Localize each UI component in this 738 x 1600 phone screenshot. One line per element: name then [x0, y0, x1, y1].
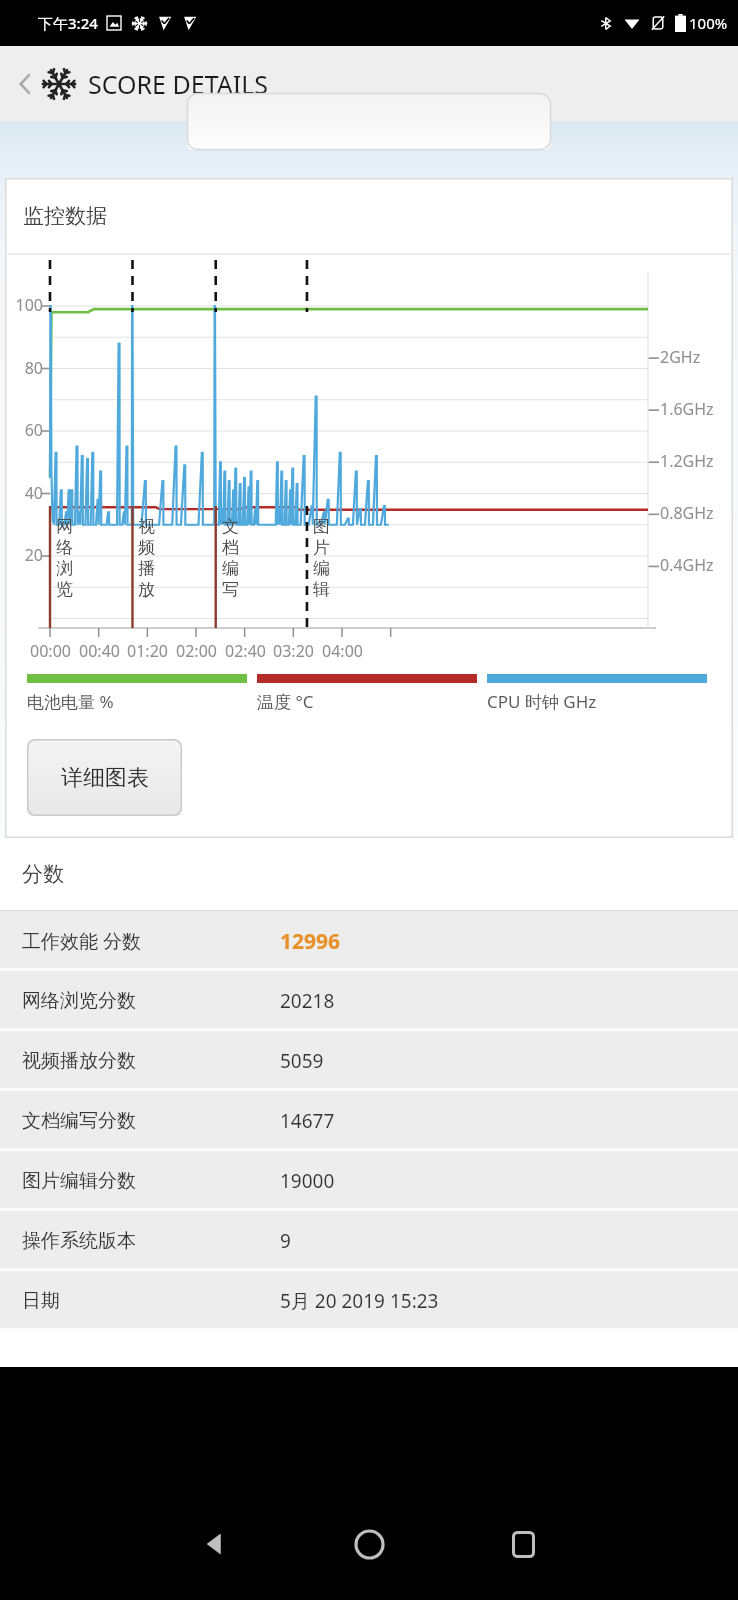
staticText: 放: [138, 579, 155, 600]
button[interactable]: 工作效能 分数: [0, 911, 738, 971]
button[interactable]: 网络浏览分数: [0, 971, 738, 1031]
staticText: 电池电量 %: [27, 690, 114, 713]
staticText: 100: [15, 294, 43, 316]
staticText: 档: [222, 537, 239, 558]
staticText: 监控数据: [23, 203, 107, 229]
staticText: 00:40: [79, 640, 120, 662]
staticText: 视: [138, 516, 155, 537]
staticText: 编: [313, 558, 330, 579]
staticText: 20218: [280, 988, 335, 1014]
staticText: 图: [313, 516, 330, 537]
staticText: 12996: [280, 927, 341, 956]
staticText: 分数: [22, 861, 64, 887]
staticText: 5月 20 2019 15:23: [280, 1288, 439, 1314]
button[interactable]: Back: [183, 1512, 247, 1576]
staticText: 5059: [280, 1048, 324, 1074]
staticText: 9: [280, 1228, 291, 1254]
staticText: 下午3:24: [38, 13, 98, 33]
staticText: 03:20: [273, 640, 314, 662]
button[interactable]: 视频播放分数: [0, 1031, 738, 1091]
button[interactable]: 图片编辑分数: [0, 1151, 738, 1211]
button[interactable]: 详细图表: [27, 739, 182, 816]
staticText: 40: [24, 482, 43, 504]
staticText: 视频播放分数: [22, 1049, 136, 1073]
staticText: 0.8GHz: [660, 502, 714, 524]
staticText: 14677: [280, 1108, 335, 1134]
button[interactable]: 文档编写分数: [0, 1091, 738, 1151]
staticText: 日期: [22, 1289, 60, 1313]
staticText: 04:00: [322, 640, 363, 662]
staticText: 图片编辑分数: [22, 1169, 136, 1193]
staticText: CPU 时钟 GHz: [487, 690, 597, 713]
staticText: 80: [24, 357, 43, 379]
staticText: 02:40: [225, 640, 266, 662]
staticText: 频: [138, 537, 155, 558]
staticText: 览: [56, 579, 73, 600]
staticText: 文: [222, 516, 239, 537]
staticText: 操作系统版本: [22, 1229, 136, 1253]
button[interactable]: 操作系统版本: [0, 1211, 738, 1271]
staticText: 播: [138, 558, 155, 579]
staticText: 1.6GHz: [660, 398, 714, 420]
staticText: 1.2GHz: [660, 450, 714, 472]
button[interactable]: 日期: [0, 1271, 738, 1331]
staticText: 网: [56, 516, 73, 537]
staticText: 详细图表: [61, 764, 149, 792]
staticText: 02:00: [176, 640, 217, 662]
staticText: 100%: [689, 13, 728, 33]
staticText: 文档编写分数: [22, 1109, 136, 1133]
staticText: 片: [313, 537, 330, 558]
staticText: 络: [56, 537, 73, 558]
staticText: 60: [24, 419, 43, 441]
staticText: 01:20: [127, 640, 168, 662]
staticText: 工作效能 分数: [22, 928, 141, 954]
staticText: 辑: [313, 579, 330, 600]
staticText: 0.4GHz: [660, 554, 714, 576]
button[interactable]: Recent apps: [491, 1512, 555, 1576]
staticText: 19000: [280, 1168, 335, 1194]
staticText: SCORE DETAILS: [88, 67, 269, 101]
staticText: 2GHz: [660, 346, 701, 368]
staticText: 温度 °C: [257, 690, 314, 713]
staticText: 20: [24, 544, 43, 566]
staticText: 网络浏览分数: [22, 989, 136, 1013]
button[interactable]: Home: [337, 1512, 401, 1576]
staticText: 00:00: [30, 640, 71, 662]
staticText: 浏: [56, 558, 73, 579]
button[interactable]: Back: [8, 67, 42, 101]
staticText: 写: [222, 579, 239, 600]
staticText: 编: [222, 558, 239, 579]
